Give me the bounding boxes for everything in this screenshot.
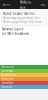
staticText: Item four <box>1 77 14 81</box>
staticText: Item six <box>1 85 11 89</box>
staticText: Menu <box>2 3 10 6</box>
button[interactable]: Item six <box>0 85 48 89</box>
staticText: Item two <box>1 69 13 73</box>
staticText: Third supporting line here <box>3 20 42 24</box>
button[interactable]: Acct <box>39 3 46 6</box>
button[interactable]: Item three <box>0 73 48 77</box>
button[interactable]: Item four <box>0 77 48 81</box>
staticText: Item one <box>1 65 14 69</box>
staticText: Secondary supporting line <box>3 16 40 20</box>
staticText: Item three <box>1 73 16 77</box>
staticText: Reference <box>19 0 31 10</box>
button[interactable]: Menu <box>1 3 11 6</box>
staticText: Acct <box>40 3 45 6</box>
button[interactable]: Item two <box>0 69 48 73</box>
button[interactable]: Item one <box>0 65 48 69</box>
button[interactable]: Item five <box>0 81 48 85</box>
staticText: Full Melt Breakdown <box>1 32 29 36</box>
staticText: Item five <box>1 81 13 85</box>
staticText: Exchange Liquid <box>1 27 23 31</box>
staticText: Notice header text line <box>3 12 35 15</box>
